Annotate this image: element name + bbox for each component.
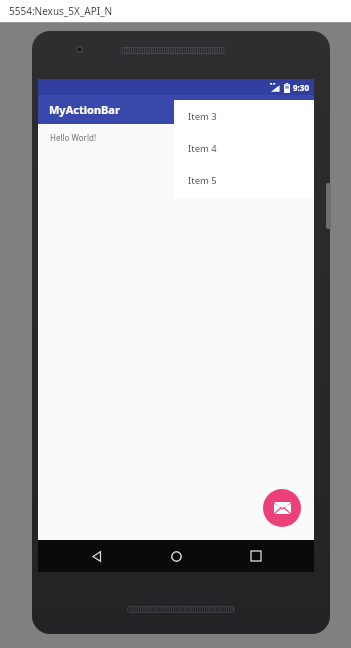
staticText: Item 5	[188, 174, 217, 187]
button[interactable]: Item 5	[174, 164, 314, 196]
button[interactable]: Back	[74, 540, 118, 572]
staticText: 9:30	[293, 82, 309, 93]
staticText: Item 4	[188, 142, 217, 155]
staticText: Item 3	[188, 110, 217, 123]
staticText: 5554:Nexus_5X_API_N	[9, 4, 113, 18]
staticText: MyActionBar	[49, 102, 120, 117]
button[interactable]: Item 3	[174, 100, 314, 132]
button[interactable]: Home	[154, 540, 198, 572]
button[interactable]: Recent apps	[234, 540, 278, 572]
button[interactable]: MyActionBar	[38, 95, 314, 124]
staticText: Hello World!	[50, 132, 97, 143]
button[interactable]: Compose email	[263, 489, 301, 527]
button[interactable]: Item 4	[174, 132, 314, 164]
